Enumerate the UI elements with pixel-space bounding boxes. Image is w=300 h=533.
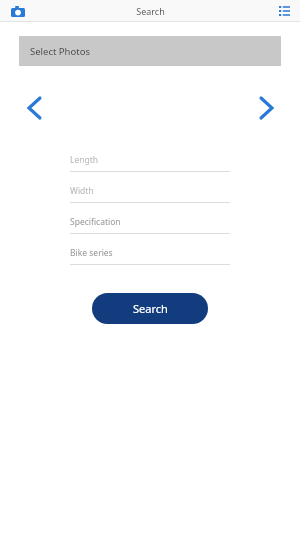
button[interactable]: Next bbox=[252, 94, 280, 122]
staticText: Bike series bbox=[70, 247, 113, 259]
staticText: Select Photos bbox=[30, 45, 90, 58]
button[interactable]: Camera bbox=[8, 1, 28, 21]
button[interactable]: Specification bbox=[70, 216, 230, 234]
staticText: Length bbox=[70, 154, 99, 166]
button[interactable]: Bike series bbox=[70, 247, 230, 265]
staticText: Width bbox=[70, 185, 94, 197]
button[interactable]: Previous bbox=[20, 94, 48, 122]
button[interactable]: Width bbox=[70, 185, 230, 203]
staticText: Search bbox=[136, 5, 165, 17]
button[interactable]: Select Photos bbox=[19, 36, 281, 66]
staticText: Specification bbox=[70, 216, 121, 228]
button[interactable]: Search bbox=[92, 293, 208, 324]
button[interactable]: Length bbox=[70, 154, 230, 172]
staticText: Search bbox=[133, 301, 168, 316]
button[interactable]: List view bbox=[275, 2, 293, 20]
